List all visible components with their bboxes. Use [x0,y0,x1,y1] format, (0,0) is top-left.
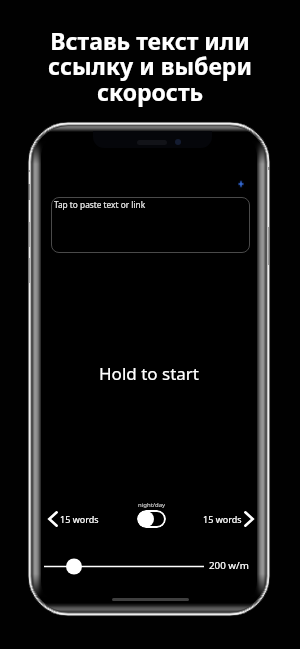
staticText: Tap to paste text or link [54,199,146,210]
staticText: 15 words [60,513,99,525]
staticText: Вставь текст или ссылку и выбери скорост… [48,25,252,108]
button[interactable]: 15 words [203,511,254,527]
button[interactable] [41,554,221,579]
button[interactable]: 15 words [48,511,99,527]
staticText: 15 words [203,513,242,525]
staticText: night/day [138,501,166,509]
staticText: 200 w/m [209,559,249,572]
staticText: Hold to start [99,362,199,385]
button[interactable] [137,510,166,528]
button[interactable]: Add [232,175,250,193]
button[interactable]: Tap to paste text or link [51,197,250,253]
